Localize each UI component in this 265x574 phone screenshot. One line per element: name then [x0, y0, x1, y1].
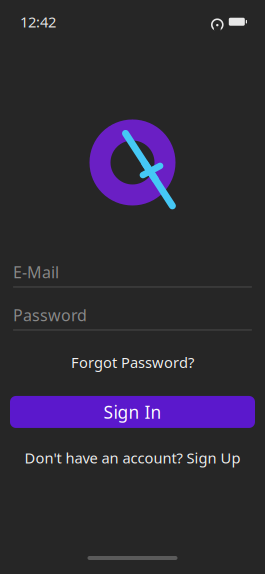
staticText: E-Mail: [13, 261, 59, 283]
button[interactable]: Forgot Password?: [61, 348, 204, 376]
staticText: Don't have an account? Sign Up: [24, 448, 240, 467]
button[interactable]: Don't have an account? Sign Up: [14, 444, 250, 471]
staticText: Password: [13, 304, 87, 326]
staticText: 12:42: [20, 12, 56, 31]
button[interactable]: Sign In: [10, 396, 255, 428]
staticText: Forgot Password?: [71, 352, 194, 372]
staticText: Sign In: [103, 400, 161, 423]
